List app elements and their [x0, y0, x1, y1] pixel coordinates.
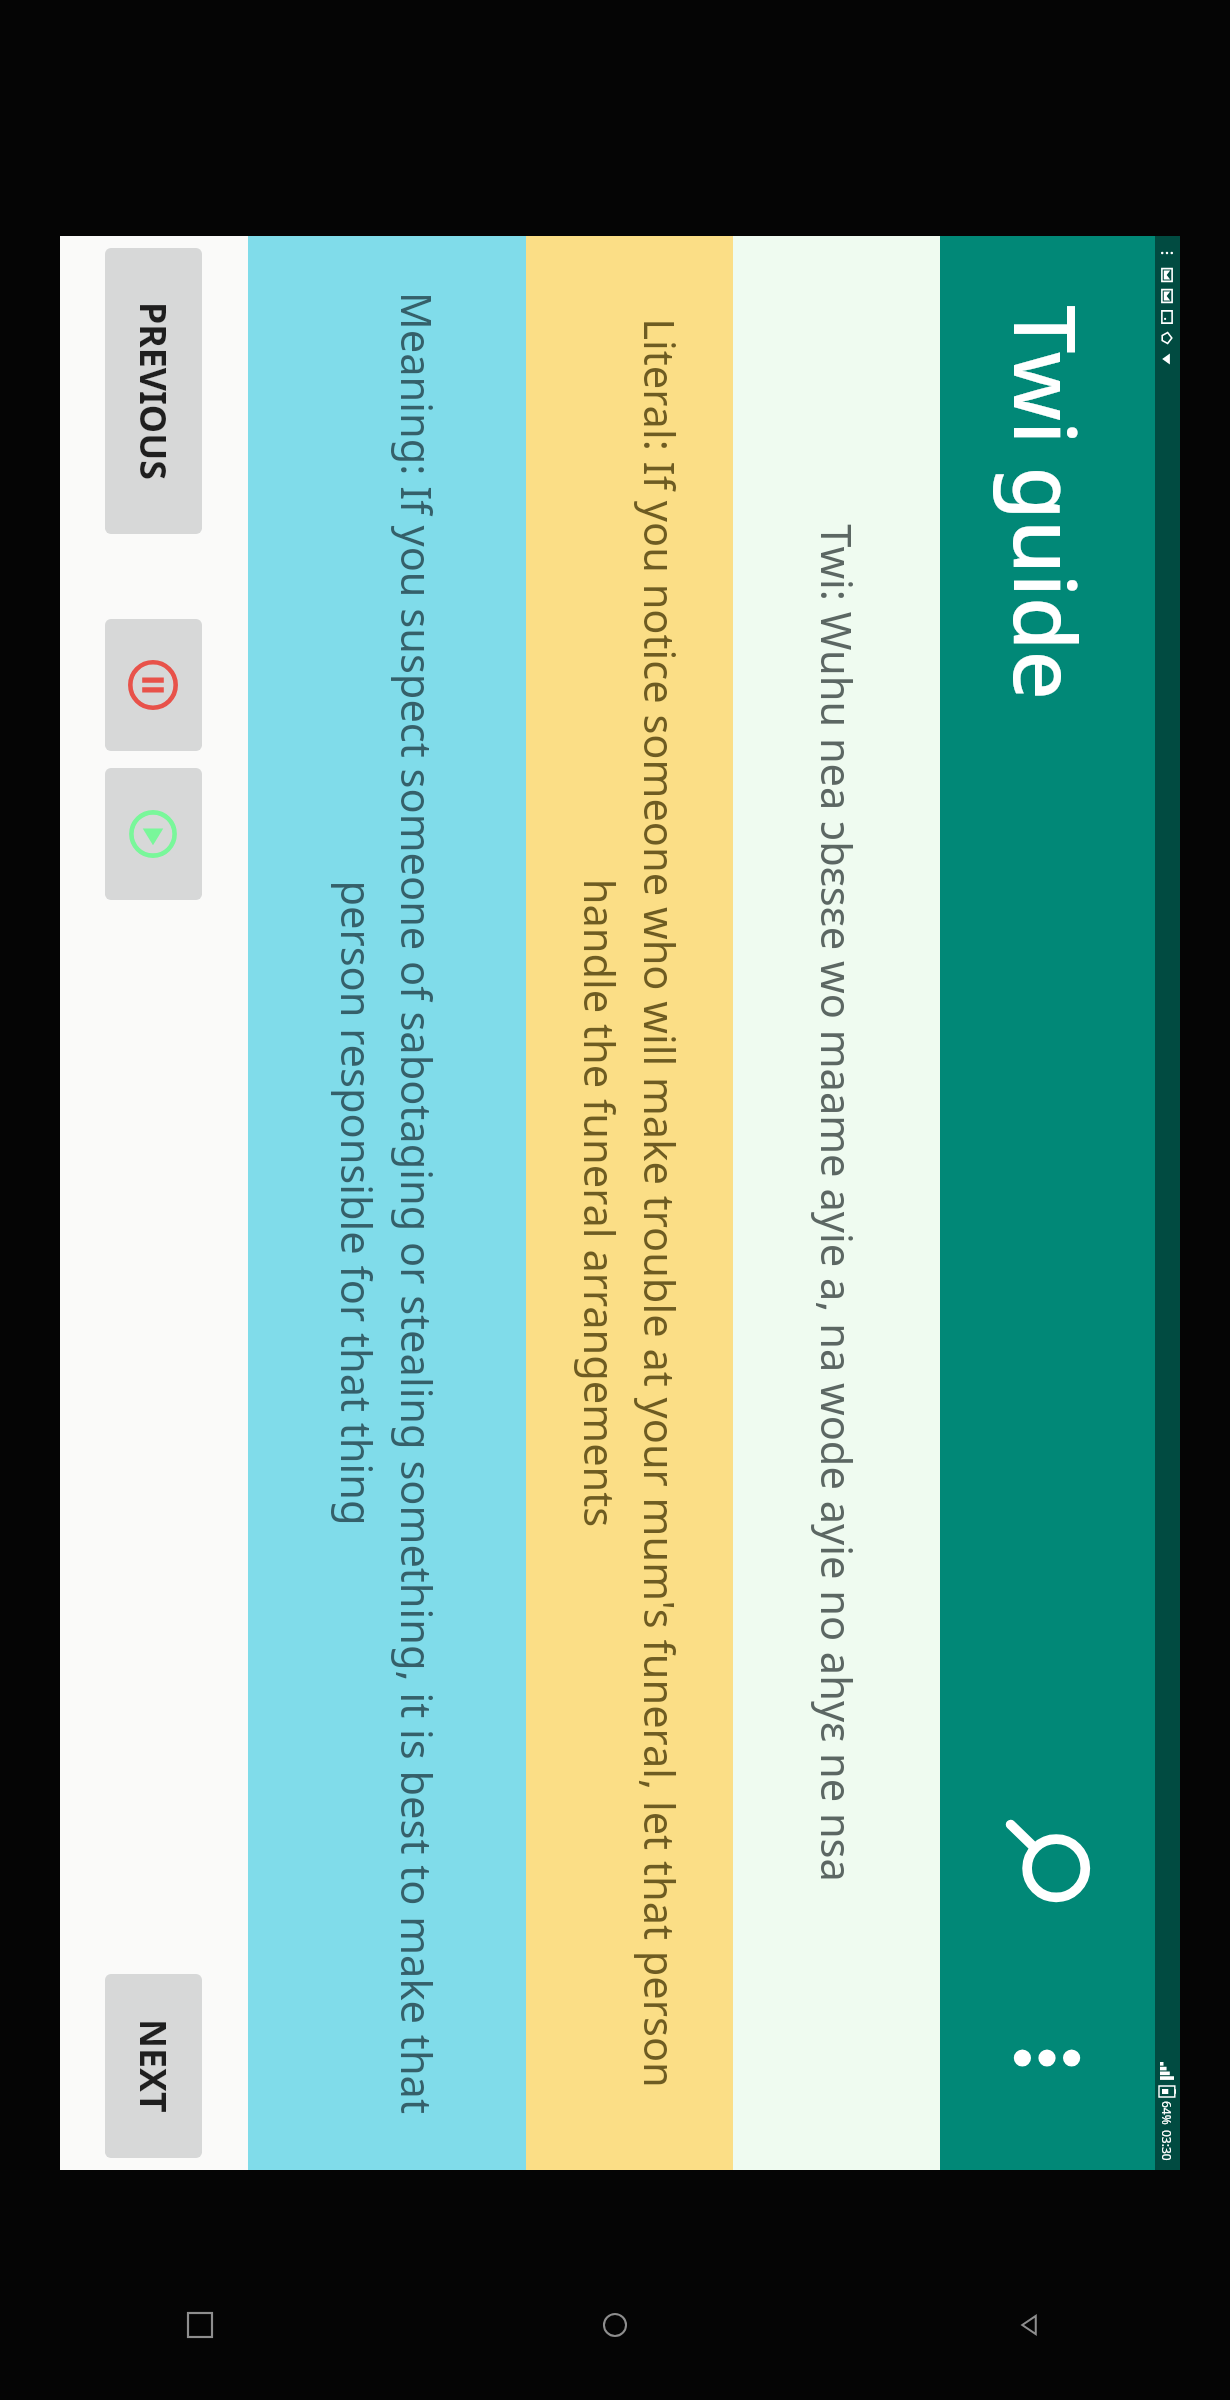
button[interactable]: More options	[948, 1959, 1146, 2157]
staticText: Twi guide	[989, 305, 1106, 700]
button[interactable]: Search	[948, 1761, 1146, 1959]
button[interactable]: NEXT	[105, 1974, 202, 2158]
button[interactable]: Back	[1002, 2297, 1058, 2353]
button[interactable]: Literal: If you notice someone who will …	[526, 236, 733, 2170]
button[interactable]: Meaning: If you suspect someone of sabot…	[248, 236, 526, 2170]
staticText: Literal: If you notice someone who will …	[571, 269, 688, 2137]
staticText: 64%	[1159, 2101, 1175, 2125]
button[interactable]: PREVIOUS	[105, 248, 202, 534]
button[interactable]: Stop	[105, 619, 202, 751]
button[interactable]: Twi: Wuhu nea ɔbɛsɛe wo maame ayie a, na…	[733, 236, 940, 2170]
staticText: 03:30	[1159, 2130, 1175, 2161]
button[interactable]: Play	[105, 768, 202, 900]
staticText: Meaning: If you suspect someone of sabot…	[328, 280, 445, 2126]
button[interactable]: Recents	[172, 2297, 228, 2353]
staticText: PREVIOUS	[129, 302, 178, 480]
button[interactable]: Home	[587, 2297, 643, 2353]
staticText: NEXT	[129, 2019, 178, 2113]
staticText: Twi: Wuhu nea ɔbɛsɛe wo maame ayie a, na…	[808, 524, 865, 1882]
